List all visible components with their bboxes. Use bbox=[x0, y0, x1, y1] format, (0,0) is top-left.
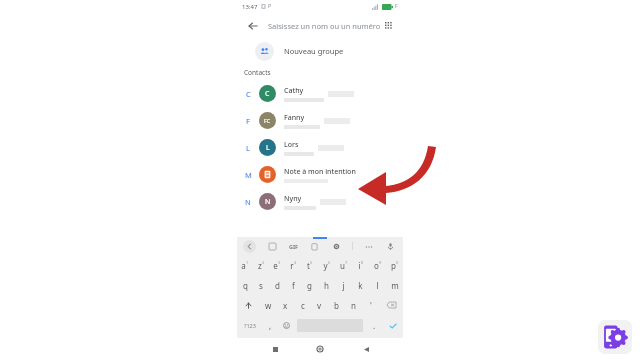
staticText: 0 bbox=[396, 260, 399, 265]
button[interactable]: GIF bbox=[289, 243, 299, 250]
button[interactable]: . bbox=[366, 315, 382, 336]
button[interactable]: , bbox=[262, 315, 278, 336]
staticText: Lors bbox=[284, 140, 299, 150]
staticText: o bbox=[374, 260, 379, 271]
staticText: GIF bbox=[289, 243, 299, 250]
button[interactable]: h bbox=[318, 275, 335, 295]
button[interactable]: i bbox=[352, 255, 369, 275]
staticText: N bbox=[265, 197, 271, 207]
button[interactable]: Enter bbox=[382, 315, 403, 336]
button[interactable]: C bbox=[237, 80, 403, 107]
button[interactable]: r bbox=[285, 255, 301, 275]
staticText: ?123 bbox=[244, 322, 256, 329]
button[interactable]: Back bbox=[244, 17, 262, 35]
staticText: Contacts bbox=[244, 68, 271, 77]
button[interactable]: M bbox=[237, 161, 403, 188]
button[interactable]: Stickers bbox=[266, 240, 279, 253]
button[interactable]: c bbox=[294, 295, 311, 315]
button[interactable]: N bbox=[237, 188, 403, 215]
staticText: 4 bbox=[294, 260, 297, 265]
button[interactable]: Settings bbox=[330, 240, 343, 253]
button[interactable]: t bbox=[301, 255, 318, 275]
button[interactable]: e bbox=[269, 255, 285, 275]
staticText: N bbox=[245, 197, 251, 207]
staticText: a bbox=[241, 260, 246, 271]
button[interactable]: Home bbox=[312, 341, 328, 357]
staticText: d bbox=[275, 280, 280, 291]
button[interactable]: v bbox=[311, 295, 328, 315]
staticText: z bbox=[258, 260, 262, 271]
button[interactable]: ' bbox=[362, 295, 379, 315]
button[interactable]: d bbox=[269, 275, 285, 295]
staticText: 7 bbox=[345, 260, 348, 265]
staticText: 1 bbox=[246, 260, 249, 265]
staticText: l bbox=[376, 280, 379, 291]
staticText: FC bbox=[264, 117, 271, 124]
button[interactable]: s bbox=[253, 275, 269, 295]
staticText: 6 bbox=[328, 260, 331, 265]
staticText: Note à mon intention bbox=[284, 167, 356, 177]
button[interactable]: Shift bbox=[237, 295, 260, 315]
button[interactable]: y bbox=[318, 255, 335, 275]
staticText: Nyny bbox=[284, 194, 302, 204]
staticText: u bbox=[340, 260, 345, 271]
button[interactable]: x bbox=[277, 295, 294, 315]
button[interactable]: Clipboard bbox=[308, 240, 321, 253]
staticText: y bbox=[323, 260, 328, 271]
button[interactable]: l bbox=[369, 275, 386, 295]
button[interactable]: Dialpad bbox=[381, 18, 396, 34]
button[interactable]: Voice input bbox=[384, 240, 397, 253]
button[interactable]: u bbox=[335, 255, 352, 275]
staticText: Cathy bbox=[284, 86, 304, 96]
staticText: i bbox=[358, 260, 361, 271]
button[interactable]: k bbox=[352, 275, 369, 295]
button[interactable]: Recents bbox=[267, 341, 283, 357]
button[interactable]: z bbox=[253, 255, 269, 275]
staticText: 2 bbox=[262, 260, 265, 265]
button[interactable]: Backspace bbox=[379, 295, 403, 315]
button[interactable]: Back bbox=[243, 240, 256, 253]
staticText: c bbox=[301, 300, 305, 311]
button[interactable]: ?123 bbox=[237, 315, 262, 336]
button[interactable]: Back bbox=[358, 341, 374, 357]
staticText: 3 bbox=[278, 260, 281, 265]
staticText: f bbox=[292, 280, 295, 291]
button[interactable]: F bbox=[237, 107, 403, 134]
button[interactable]: q bbox=[237, 275, 253, 295]
staticText: g bbox=[307, 280, 312, 291]
staticText: 5 bbox=[310, 260, 313, 265]
staticText: m bbox=[391, 280, 399, 291]
button[interactable]: p bbox=[386, 255, 403, 275]
button[interactable]: m bbox=[386, 275, 403, 295]
staticText: . bbox=[373, 320, 376, 331]
staticText: C bbox=[265, 89, 270, 99]
staticText: x bbox=[283, 300, 288, 311]
button[interactable]: j bbox=[335, 275, 352, 295]
staticText: s bbox=[259, 280, 263, 291]
staticText: Fanny bbox=[284, 113, 305, 123]
button[interactable]: n bbox=[345, 295, 362, 315]
staticText: e bbox=[273, 260, 278, 271]
staticText: b bbox=[334, 300, 339, 311]
button[interactable]: a bbox=[237, 255, 253, 275]
button[interactable]: Nouveau groupe bbox=[237, 38, 403, 64]
button[interactable]: b bbox=[328, 295, 345, 315]
button[interactable]: L bbox=[237, 134, 403, 161]
button[interactable]: More bbox=[362, 240, 375, 253]
button[interactable]: f bbox=[285, 275, 301, 295]
staticText: q bbox=[243, 280, 248, 291]
button[interactable]: o bbox=[369, 255, 386, 275]
staticText: C bbox=[246, 89, 251, 99]
staticText: F bbox=[246, 116, 250, 126]
staticText: , bbox=[269, 320, 272, 331]
staticText: M bbox=[245, 170, 252, 180]
staticText: L bbox=[266, 143, 270, 153]
staticText: t bbox=[307, 260, 310, 271]
button[interactable]: g bbox=[301, 275, 318, 295]
staticText: n bbox=[351, 300, 356, 311]
staticText: Nouveau groupe bbox=[284, 46, 344, 56]
button[interactable]: Emoji bbox=[278, 315, 294, 336]
staticText: r bbox=[290, 260, 294, 271]
button[interactable]: w bbox=[260, 295, 277, 315]
